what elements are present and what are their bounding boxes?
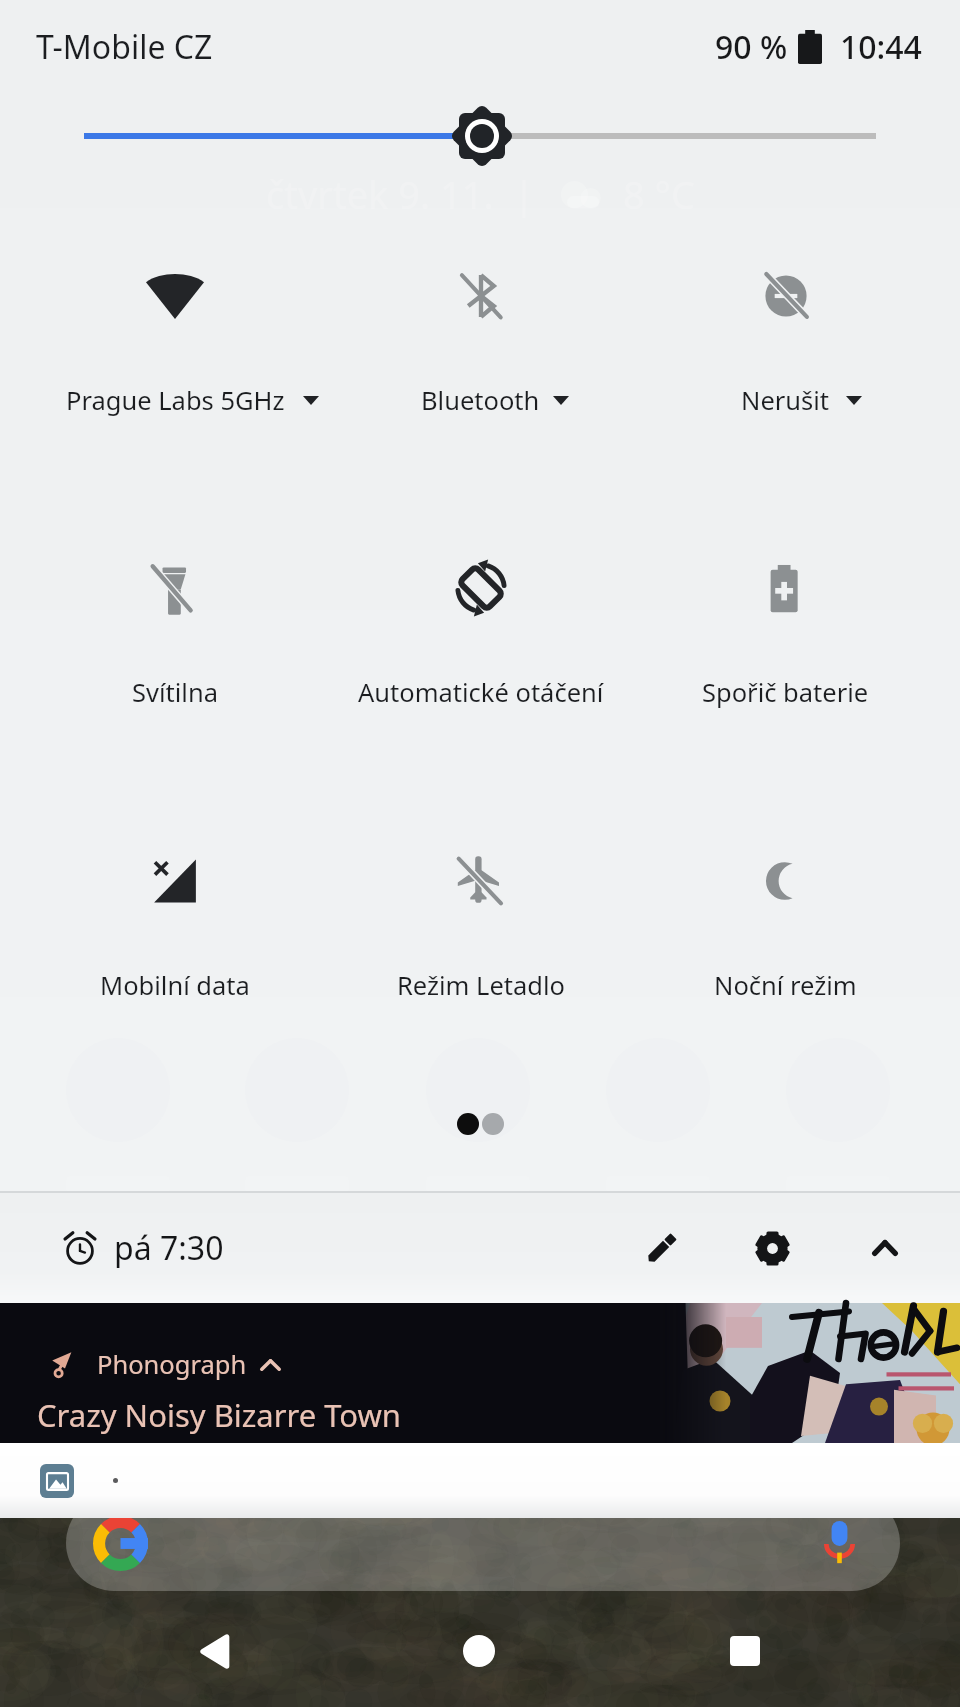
staticText: Automatické otáčení	[358, 675, 604, 710]
button[interactable]	[0, 88, 960, 184]
staticText: pá 7:30	[114, 1226, 224, 1270]
button[interactable]: Automatické otáčení	[328, 542, 633, 742]
button[interactable]: Svítilna	[22, 542, 328, 742]
button[interactable]: Collapse	[839, 1202, 931, 1294]
button[interactable]	[0, 1443, 960, 1518]
button[interactable]: Edit	[615, 1202, 707, 1294]
staticText: Bluetooth	[421, 383, 540, 418]
button[interactable]: Režim Letadlo	[328, 835, 633, 1035]
button[interactable]: Bluetooth	[328, 250, 633, 450]
button[interactable]	[66, 1495, 900, 1591]
button[interactable]: Phonograph	[0, 1303, 960, 1443]
staticText: 10:44	[840, 25, 922, 69]
staticText: Svítilna	[132, 675, 218, 710]
button[interactable]: Nerušit	[633, 250, 938, 450]
button[interactable]: Back	[135, 1571, 295, 1707]
button[interactable]: Recent apps	[665, 1571, 825, 1707]
staticText: 90 %	[715, 25, 788, 69]
button[interactable]: Noční režim	[633, 835, 938, 1035]
staticText: Crazy Noisy Bizarre Town	[37, 1394, 402, 1436]
staticText: Spořič baterie	[702, 675, 869, 710]
staticText: Prague Labs 5GHz	[66, 383, 285, 418]
staticText: Režim Letadlo	[397, 968, 565, 1003]
staticText: Nerušit	[741, 383, 830, 418]
button[interactable]: Mobilní data	[22, 835, 328, 1035]
staticText: Mobilní data	[100, 968, 250, 1003]
button[interactable]: Spořič baterie	[633, 542, 938, 742]
button[interactable]: Settings	[726, 1202, 818, 1294]
staticText: Noční režim	[714, 968, 857, 1003]
staticText: T-Mobile CZ	[36, 25, 213, 69]
button[interactable]: pá 7:30	[63, 1226, 224, 1270]
button[interactable]: Home	[399, 1571, 559, 1707]
staticText: Phonograph	[97, 1347, 247, 1382]
button[interactable]: Prague Labs 5GHz	[22, 250, 328, 450]
